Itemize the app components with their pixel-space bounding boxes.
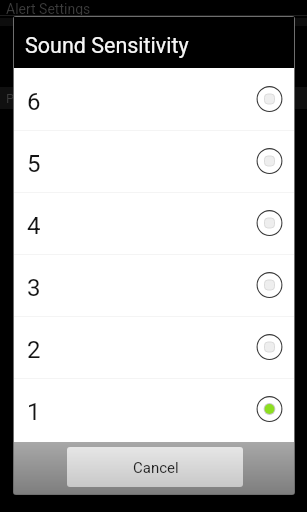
button[interactable]: Cancel: [67, 447, 243, 487]
button[interactable]: 2: [14, 316, 294, 378]
staticText: Cancel: [133, 459, 179, 477]
other: Select option: [254, 270, 284, 300]
button[interactable]: 1: [14, 378, 294, 440]
button[interactable]: 4: [14, 192, 294, 254]
button[interactable]: 5: [14, 130, 294, 192]
staticText: 6: [27, 88, 254, 116]
button[interactable]: 3: [14, 254, 294, 316]
staticText: 5: [27, 150, 254, 178]
other: Select option: [254, 208, 284, 238]
staticText: P: [6, 91, 15, 106]
staticText: Alert Settings: [6, 1, 91, 17]
staticText: 1: [27, 398, 254, 426]
other: Select option: [254, 84, 284, 114]
staticText: Sound Sensitivity: [25, 33, 189, 58]
staticText: 2: [27, 336, 254, 364]
staticText: 4: [27, 212, 254, 240]
other: Select option: [254, 332, 284, 362]
other: Selected option: [254, 394, 284, 424]
button[interactable]: 6: [14, 68, 294, 130]
staticText: 3: [27, 274, 254, 302]
other: Select option: [254, 146, 284, 176]
